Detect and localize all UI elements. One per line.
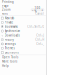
button[interactable]: Themes [0, 46, 46, 50]
staticText: 100% [35, 6, 41, 13]
button[interactable]: New tab [0, 16, 46, 20]
button[interactable]: Zoom in [41, 8, 44, 11]
staticText: Ctrl+H [35, 38, 44, 41]
button[interactable]: Private [0, 20, 46, 25]
staticText: More tools [2, 60, 17, 63]
staticText: Themes [5, 46, 15, 50]
staticText: Private [5, 21, 14, 24]
staticText: Bookmarks [5, 25, 18, 28]
staticText: Ctrl+Shift+O [27, 25, 44, 28]
staticText: Printing [2, 0, 14, 4]
staticText: + [42, 8, 44, 11]
button[interactable]: Zoom out [31, 8, 34, 11]
button[interactable]: Extensions [0, 50, 46, 55]
staticText: Synchronize [5, 29, 21, 33]
staticText: Cancel [35, 12, 44, 15]
button[interactable]: Downloads [0, 33, 46, 37]
staticText: Ctrl+, [36, 42, 44, 46]
staticText: – [32, 8, 33, 11]
button[interactable]: Font [0, 12, 46, 16]
staticText: Open Tools [2, 55, 18, 59]
button[interactable]: Settings [0, 42, 46, 46]
staticText: Font [2, 12, 8, 15]
staticText: Help [2, 64, 9, 68]
button[interactable]: Help [0, 64, 46, 68]
button[interactable]: Synchronize [0, 29, 46, 33]
staticText: Downloads [5, 34, 20, 37]
staticText: Page [2, 4, 9, 8]
button[interactable]: Printing [0, 0, 46, 4]
button[interactable]: Bookmarks [0, 25, 46, 29]
button[interactable]: Open Tools [0, 55, 46, 59]
button[interactable]: Page [0, 4, 46, 8]
staticText: Ctrl+J [36, 34, 44, 37]
staticText: Settings [5, 42, 16, 46]
button[interactable]: History [0, 37, 46, 42]
button[interactable]: More tools [0, 59, 46, 64]
staticText: History [5, 38, 14, 41]
staticText: New tab [5, 16, 15, 20]
staticText: Extensions [5, 51, 19, 54]
staticText: Zoom [2, 8, 10, 11]
